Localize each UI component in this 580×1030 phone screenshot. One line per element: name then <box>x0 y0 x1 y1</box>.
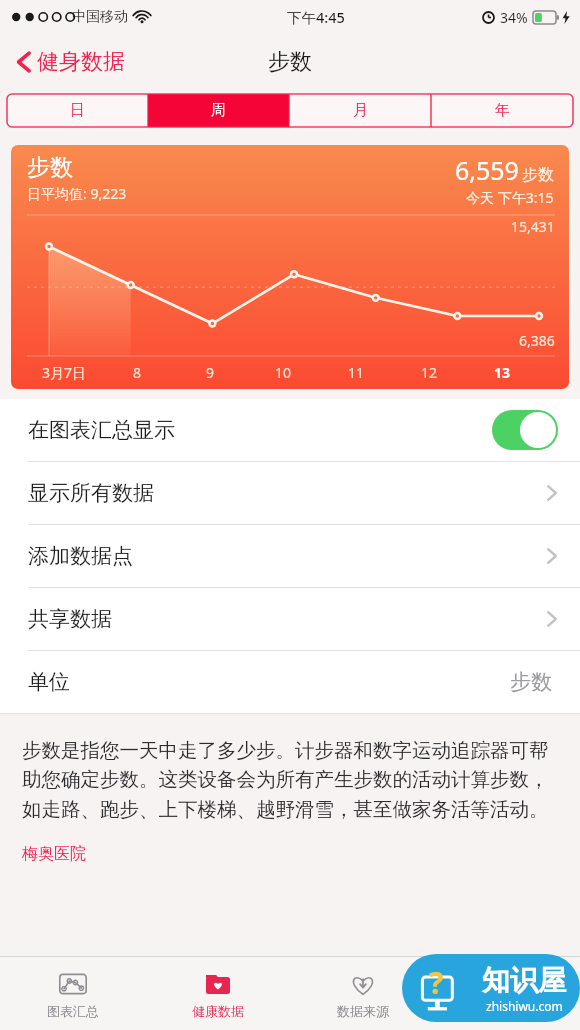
button[interactable]: 健康数据 <box>145 957 290 1030</box>
staticText: 今天 下午3:15 <box>466 188 554 207</box>
staticText: 15,431 <box>511 217 555 236</box>
staticText: 单位 <box>28 669 70 695</box>
staticText: 下午4:45 <box>287 7 345 27</box>
button[interactable]: 共享数据 <box>0 588 580 650</box>
button[interactable]: 图表汇总 <box>0 957 145 1030</box>
staticText: 月 <box>353 101 368 120</box>
staticText: 日 <box>70 101 85 120</box>
button[interactable]: 显示所有数据 <box>0 462 580 524</box>
staticText: 13 <box>494 363 511 382</box>
staticText: 8 <box>133 363 142 382</box>
staticText: 知识屋 <box>482 963 566 998</box>
staticText: 步数是指您一天中走了多少步。计步器和数字运动追踪器可帮助您确定步数。这类设备会为… <box>22 738 558 822</box>
staticText: 医疗急救卡 <box>475 1003 540 1019</box>
staticText: 3月7日 <box>42 363 87 382</box>
staticText: 健康数据 <box>192 1003 244 1019</box>
staticText: 周 <box>211 101 226 120</box>
staticText: 11 <box>348 363 365 382</box>
button[interactable]: 单位 <box>0 651 580 713</box>
staticText: 共享数据 <box>28 606 112 632</box>
staticText: 10 <box>275 363 292 382</box>
staticText: 12 <box>421 363 438 382</box>
staticText: 年 <box>495 101 510 120</box>
staticText: 在图表汇总显示 <box>28 417 175 443</box>
staticText: 步数 <box>27 153 73 182</box>
staticText: zhishiwu.com <box>486 998 563 1014</box>
button[interactable]: 数据来源 <box>290 957 435 1030</box>
staticText: 6,386 <box>519 331 555 350</box>
staticText: 中国移动 <box>72 8 128 26</box>
button[interactable]: 医疗急救卡 <box>435 957 580 1030</box>
staticText: 健身数据 <box>37 48 125 76</box>
staticText: 步数 <box>522 165 554 185</box>
staticText: 步数 <box>268 48 312 76</box>
staticText: 数据来源 <box>337 1003 389 1019</box>
button[interactable]: 健身数据 <box>12 42 129 82</box>
button[interactable]: 添加数据点 <box>0 525 580 587</box>
other: 在图表汇总显示开关 <box>492 410 558 450</box>
button[interactable]: 月 <box>289 94 431 127</box>
staticText: 添加数据点 <box>28 543 133 569</box>
staticText: 步数 <box>510 669 552 695</box>
staticText: 9 <box>206 363 215 382</box>
button[interactable]: 周 <box>148 94 289 127</box>
staticText: 图表汇总 <box>47 1003 99 1019</box>
staticText: 日平均值: 9,223 <box>27 184 127 203</box>
button[interactable]: 日 <box>7 94 148 127</box>
staticText: ? <box>429 962 444 1003</box>
button[interactable]: 在图表汇总显示 <box>0 399 580 461</box>
button[interactable]: 步数 <box>11 145 569 389</box>
button[interactable]: 梅奥医院 <box>22 844 86 864</box>
staticText: 6,559 <box>455 153 519 187</box>
staticText: 34% <box>500 8 528 27</box>
button[interactable]: 年 <box>431 94 573 127</box>
staticText: 显示所有数据 <box>28 480 154 506</box>
